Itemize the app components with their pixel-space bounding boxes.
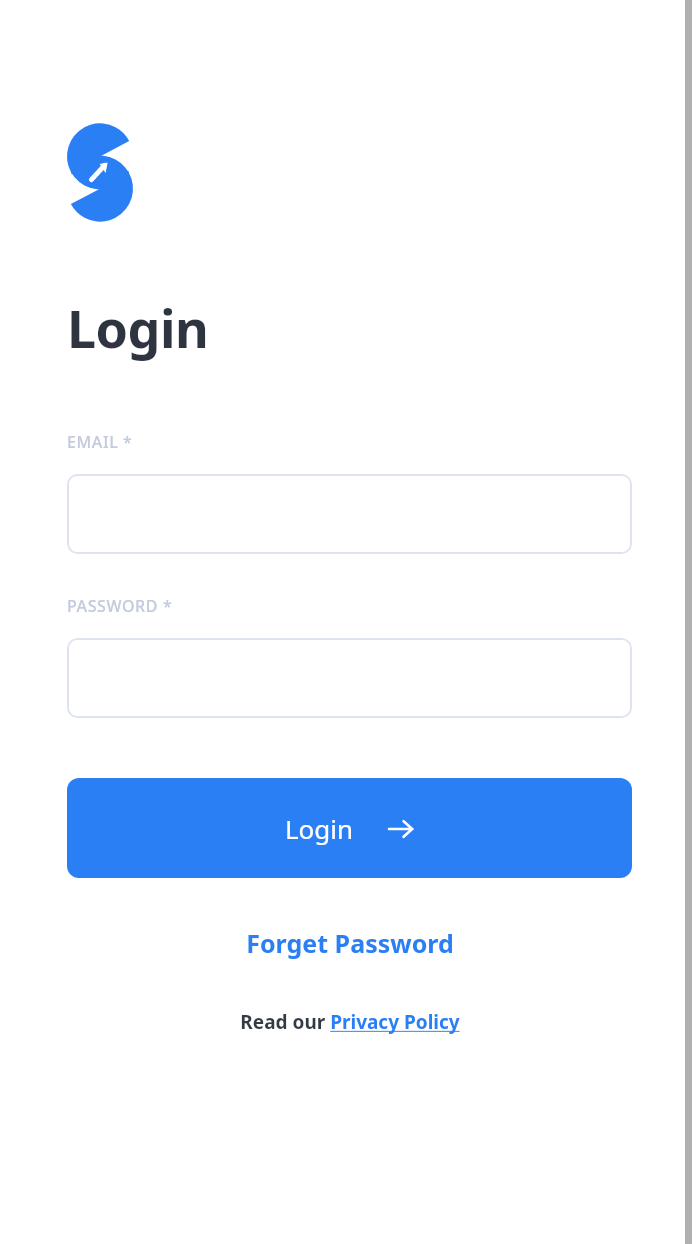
button[interactable]: Password input field bbox=[67, 638, 632, 718]
button[interactable]: Email input field bbox=[67, 474, 632, 554]
button[interactable]: Forget Password bbox=[67, 926, 632, 960]
button[interactable]: Login bbox=[67, 778, 632, 878]
staticText: Login bbox=[285, 811, 354, 846]
staticText: * bbox=[163, 595, 172, 617]
staticText: Login bbox=[67, 292, 209, 363]
button[interactable]: Read our Privacy Policy bbox=[67, 1009, 632, 1035]
staticText: Read our Privacy Policy bbox=[240, 1009, 460, 1035]
staticText: PASSWORD bbox=[67, 595, 159, 617]
staticText: Forget Password bbox=[246, 926, 454, 960]
staticText: EMAIL bbox=[67, 431, 119, 453]
staticText: * bbox=[123, 431, 132, 453]
